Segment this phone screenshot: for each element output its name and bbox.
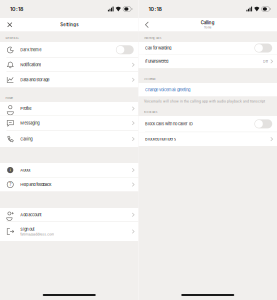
button[interactable]: Blocked numbers: [138, 132, 277, 146]
staticText: fatima@address.com: [20, 232, 54, 236]
button[interactable]: Block calls with no caller ID: [138, 116, 277, 132]
button[interactable]: i: [0, 163, 138, 178]
button[interactable]: Sign out: [0, 222, 138, 241]
button[interactable]: Data and storage: [0, 72, 138, 87]
staticText: Change voicemail greeting: [145, 87, 190, 92]
button[interactable]: Profile: [0, 102, 138, 116]
staticText: Calling: [20, 137, 32, 141]
staticText: i: [10, 168, 11, 172]
button[interactable]: Close: [4, 19, 16, 31]
button[interactable]: Calling: [0, 131, 138, 147]
staticText: Add account: [20, 212, 41, 217]
staticText: Voicemail: [144, 78, 156, 81]
staticText: Home: [204, 26, 212, 29]
button[interactable]: If unanswered: [138, 54, 277, 68]
staticText: HOME: [6, 97, 14, 100]
staticText: Notifications: [20, 62, 41, 67]
button[interactable]: Call forwarding: [138, 42, 277, 54]
staticText: Voicemails will show in the calling app …: [144, 99, 265, 103]
staticText: Blocked numbers: [145, 137, 176, 141]
staticText: Messaging: [20, 121, 39, 125]
button[interactable]: Notifications: [0, 58, 138, 72]
staticText: Block calls: [144, 111, 157, 114]
staticText: Settings: [60, 22, 78, 27]
staticText: 10:18: [148, 6, 161, 12]
staticText: Data and storage: [20, 77, 49, 82]
staticText: Off: [263, 59, 268, 64]
staticText: Block calls with no caller ID: [145, 121, 193, 126]
staticText: Profile: [20, 106, 31, 111]
staticText: GENERAL: [6, 37, 19, 40]
staticText: Calling: [201, 20, 215, 25]
button[interactable]: ?: [0, 178, 138, 191]
staticText: Dark theme: [20, 47, 41, 52]
button[interactable]: Messaging: [0, 116, 138, 131]
staticText: Call forwarding: [145, 46, 171, 50]
staticText: About: [20, 168, 30, 172]
button[interactable]: Add account: [0, 208, 138, 222]
staticText: Sign out: [20, 227, 34, 232]
staticText: ?: [9, 182, 11, 187]
staticText: Help and feedback: [20, 182, 51, 187]
staticText: 10:18: [10, 6, 23, 12]
button[interactable]: Dark theme: [0, 42, 138, 58]
staticText: If unanswered: [145, 59, 168, 64]
button[interactable]: Change voicemail greeting: [138, 83, 277, 96]
button[interactable]: Back: [141, 18, 152, 31]
staticText: Incoming calls: [144, 37, 161, 40]
